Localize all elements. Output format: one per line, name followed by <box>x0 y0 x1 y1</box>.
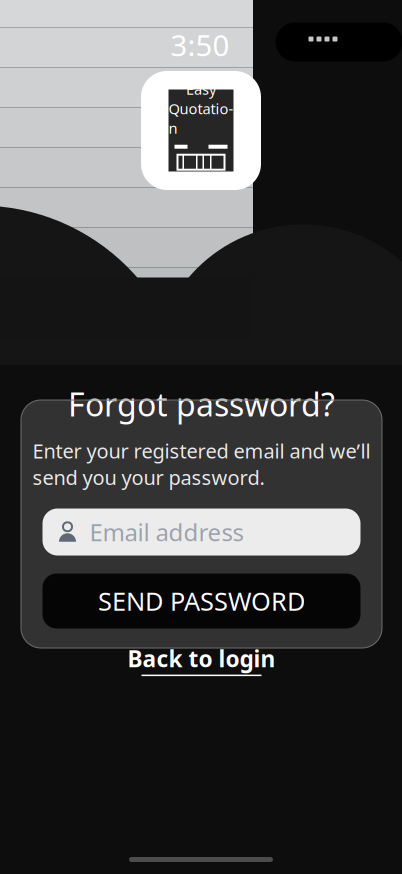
staticText: Enter your registered email and we’ll se… <box>32 437 370 490</box>
staticText: Email address <box>89 516 243 548</box>
staticText: SEND PASSWORD <box>98 584 305 618</box>
button[interactable]: SEND PASSWORD <box>42 573 360 628</box>
staticText: 3:50 <box>170 25 229 64</box>
staticText: Easy <box>186 79 216 99</box>
staticText: Back to login <box>127 643 275 674</box>
staticText: Forgot password? <box>68 383 335 425</box>
staticText: Quotation <box>168 99 233 138</box>
button[interactable]: Back to login <box>127 643 275 676</box>
